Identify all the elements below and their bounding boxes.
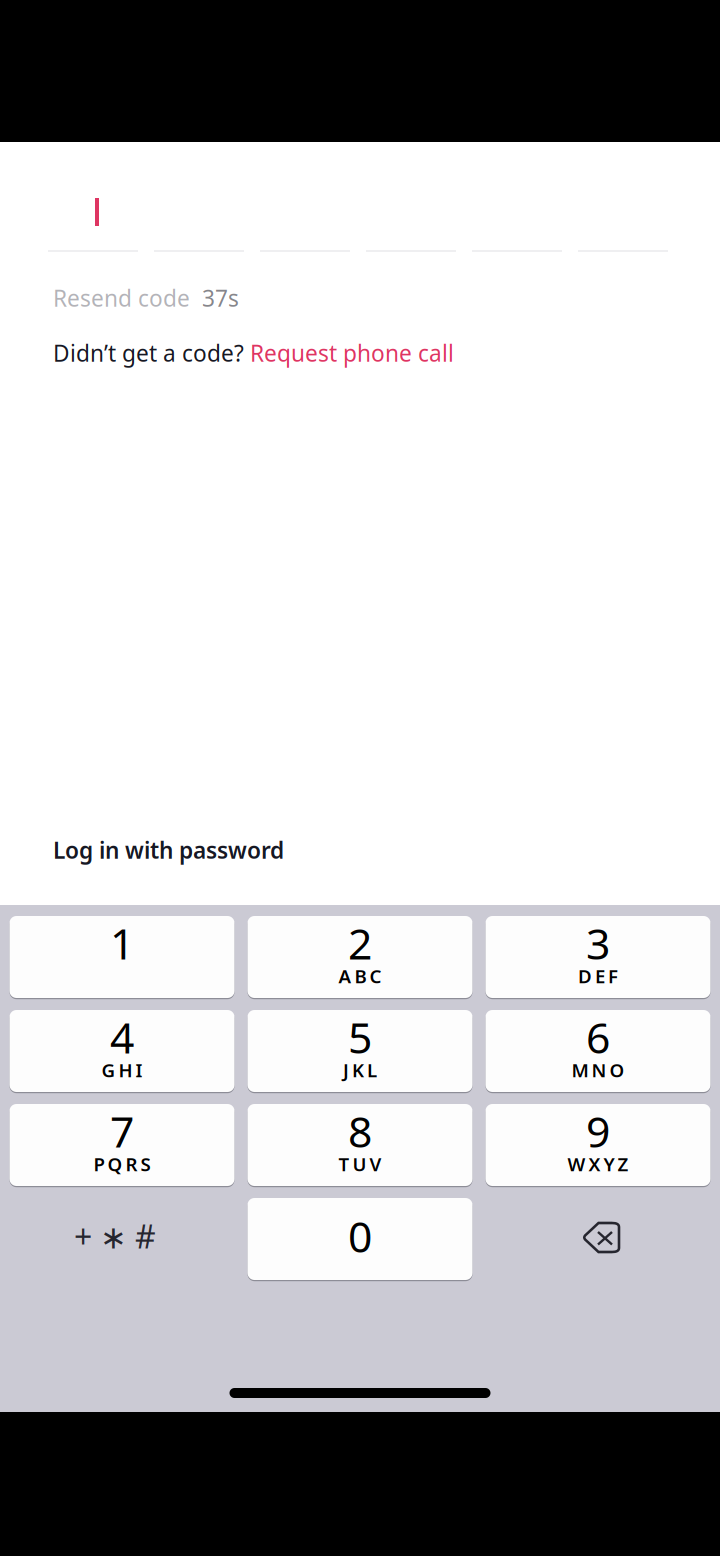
staticText: 3 (586, 915, 610, 971)
button[interactable]: Request phone call (250, 338, 454, 368)
staticText: Log in with password (53, 835, 284, 865)
staticText: 6 (586, 1009, 610, 1065)
staticText: Didn’t get a code? (53, 338, 250, 368)
button[interactable]: 2 (247, 916, 472, 998)
staticText: 4 (110, 1009, 134, 1065)
button[interactable]: 8 (247, 1104, 472, 1186)
staticText: D E F (578, 964, 618, 988)
button[interactable]: Resend code (53, 287, 673, 309)
button[interactable]: Log in with password (53, 838, 673, 862)
staticText: + ∗ # (74, 1215, 156, 1257)
button[interactable]: 5 (247, 1010, 472, 1092)
button[interactable]: 1 (9, 916, 234, 998)
staticText: 37s (190, 283, 239, 313)
staticText: Resend code (53, 283, 190, 313)
button[interactable]: Delete (485, 1198, 710, 1280)
button[interactable]: 3 (485, 916, 710, 998)
button[interactable]: 0 (247, 1198, 472, 1280)
staticText: G H I (101, 1058, 142, 1082)
staticText: 0 (348, 1208, 372, 1264)
button[interactable]: 4 (9, 1010, 234, 1092)
button[interactable]: 7 (9, 1104, 234, 1186)
staticText: 5 (348, 1009, 372, 1065)
button[interactable]: 6 (485, 1010, 710, 1092)
staticText: 9 (586, 1103, 610, 1159)
staticText: J K L (343, 1058, 377, 1082)
staticText: W X Y Z (567, 1152, 628, 1176)
button[interactable]: Symbols (9, 1198, 234, 1280)
staticText: 2 (348, 915, 372, 971)
staticText: A B C (338, 964, 381, 988)
staticText: Request phone call (250, 338, 454, 368)
staticText: 8 (348, 1103, 372, 1159)
button[interactable]: 9 (485, 1104, 710, 1186)
staticText: 7 (110, 1103, 134, 1159)
button[interactable]: Verification code (48, 192, 668, 252)
staticText: M N O (571, 1058, 624, 1082)
staticText: T U V (338, 1152, 381, 1176)
staticText: 1 (110, 915, 134, 971)
staticText: P Q R S (93, 1152, 150, 1176)
